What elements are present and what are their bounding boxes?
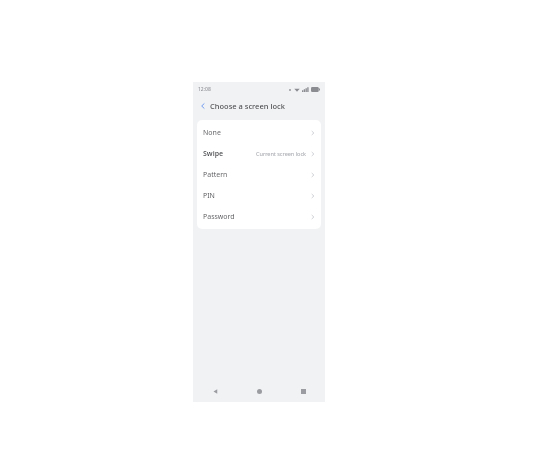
staticText: Pattern <box>203 170 228 180</box>
button[interactable]: Back <box>193 380 237 402</box>
button[interactable]: Home <box>237 380 281 402</box>
button[interactable]: None <box>197 122 321 143</box>
staticText: Password <box>203 212 235 222</box>
staticText: Current screen lock <box>256 150 307 157</box>
button[interactable]: Back <box>197 100 209 112</box>
button[interactable]: Swipe <box>197 143 321 164</box>
button[interactable]: Password <box>197 206 321 227</box>
staticText: Swipe <box>203 149 224 159</box>
button[interactable]: PIN <box>197 185 321 206</box>
staticText: PIN <box>203 191 215 201</box>
button[interactable]: Pattern <box>197 164 321 185</box>
staticText: 12:08 <box>198 86 211 93</box>
staticText: Choose a screen lock <box>210 101 285 111</box>
staticText: None <box>203 128 221 138</box>
button[interactable]: Recents <box>281 380 325 402</box>
